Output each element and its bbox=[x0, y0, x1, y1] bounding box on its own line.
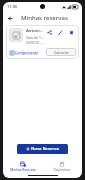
button[interactable]: Nova Reserva bbox=[17, 144, 68, 154]
button[interactable]: Edit bbox=[56, 28, 65, 37]
button[interactable]: Back bbox=[5, 13, 15, 23]
staticText: Antonio Jordão bbox=[26, 28, 44, 34]
button[interactable]: Cancelar bbox=[46, 48, 76, 56]
button[interactable]: Delete bbox=[67, 28, 76, 37]
staticText: Comprovante bbox=[15, 50, 39, 55]
staticText: Sala de Testes bbox=[26, 35, 44, 40]
button[interactable]: Minhas Reservas bbox=[3, 160, 42, 173]
button[interactable]: Comprovante bbox=[9, 49, 40, 56]
staticText: 20/05/25 às 11:00 bbox=[26, 41, 44, 45]
staticText: Minhas Reservas bbox=[10, 168, 36, 172]
staticText: 11:06 bbox=[7, 4, 18, 9]
button[interactable]: Share bbox=[45, 28, 54, 37]
staticText: Minhas reservas bbox=[21, 14, 68, 22]
staticText: Nova Reserva bbox=[31, 146, 59, 152]
staticText: Cancelar bbox=[54, 50, 69, 55]
button[interactable]: Disponíveis bbox=[42, 160, 82, 173]
staticText: Disponíveis bbox=[53, 168, 71, 172]
